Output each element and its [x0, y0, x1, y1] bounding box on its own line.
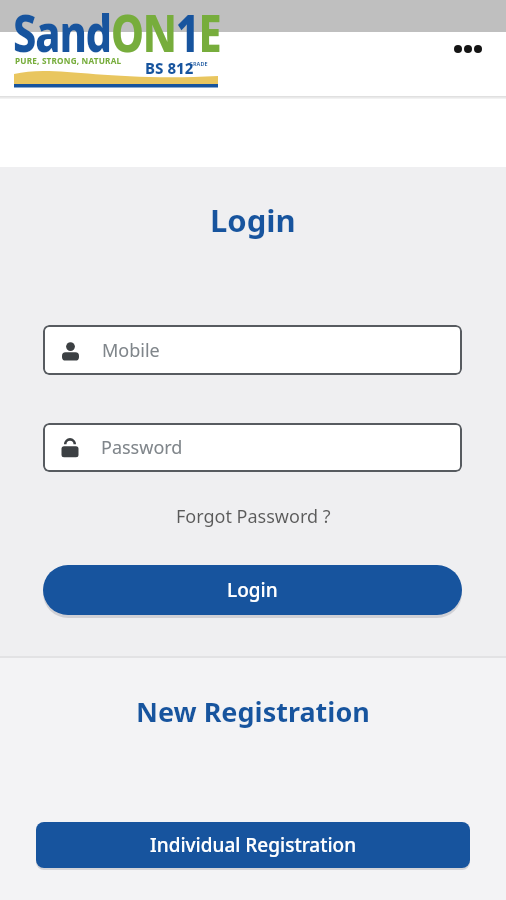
staticText: PURE, STRONG, NATURAL — [15, 55, 122, 66]
staticText: New Registration — [136, 693, 370, 729]
button[interactable]: Login — [43, 565, 462, 615]
staticText: BS 812 — [145, 58, 194, 78]
staticText: SandON1E — [13, 0, 221, 67]
button[interactable]: Password — [43, 423, 462, 472]
staticText: Login — [227, 577, 278, 603]
staticText: Login — [210, 199, 296, 241]
staticText: Mobile — [102, 338, 160, 363]
staticText: Forgot Password ? — [176, 504, 331, 529]
button[interactable]: Individual Registration — [36, 822, 470, 868]
button[interactable]: Forgot Password ? — [168, 502, 338, 530]
button[interactable] — [446, 34, 494, 64]
staticText: Password — [101, 435, 183, 460]
staticText: Individual Registration — [150, 832, 357, 858]
button[interactable]: Mobile — [43, 325, 462, 375]
staticText: GRADE — [189, 60, 208, 67]
